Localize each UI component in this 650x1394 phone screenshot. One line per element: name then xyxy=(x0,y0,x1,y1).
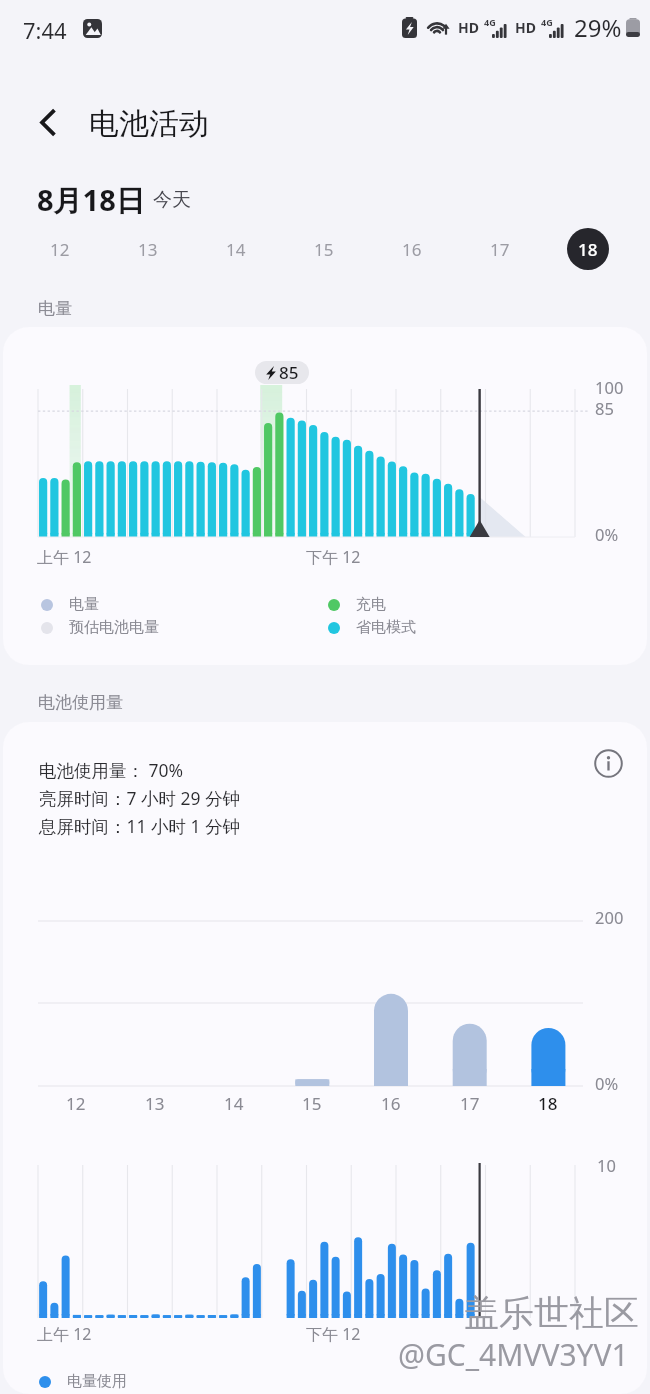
staticText: 16 xyxy=(402,238,422,261)
button[interactable]: 电池使用量： 70% xyxy=(3,722,647,1394)
staticText: 17 xyxy=(490,238,510,261)
staticText: 15 xyxy=(314,238,334,261)
staticText: 亮屏时间：7 小时 29 分钟 xyxy=(39,786,241,810)
staticText: 盖乐世社区 xyxy=(464,1291,639,1335)
staticText: 电池使用量 xyxy=(38,692,123,713)
staticText: 14 xyxy=(224,1092,244,1115)
staticText: 电池使用量： 70% xyxy=(39,758,184,782)
staticText: 电量 xyxy=(69,595,99,614)
button[interactable]: 16 xyxy=(391,228,433,270)
staticText: 29% xyxy=(574,11,622,43)
staticText: 13 xyxy=(145,1092,165,1115)
staticText: 省电模式 xyxy=(356,618,416,637)
staticText: 100 xyxy=(595,376,624,398)
staticText: 18 xyxy=(538,1092,558,1115)
button[interactable]: 返回 xyxy=(23,97,73,147)
staticText: 今天 xyxy=(153,188,191,212)
button[interactable]: 17 xyxy=(479,228,521,270)
staticText: 13 xyxy=(138,238,158,261)
staticText: 上午 12 xyxy=(37,1323,92,1345)
staticText: 4G xyxy=(541,16,553,28)
staticText: 18 xyxy=(578,238,598,261)
staticText: HD xyxy=(458,18,479,37)
button[interactable]: 信息 xyxy=(585,740,631,786)
staticText: 15 xyxy=(302,1092,322,1115)
button[interactable]: 100 xyxy=(3,327,647,665)
button[interactable]: 14 xyxy=(215,228,257,270)
button[interactable]: 18 xyxy=(567,228,609,270)
staticText: 16 xyxy=(381,1092,401,1115)
button[interactable]: 13 xyxy=(127,228,169,270)
staticText: 10 xyxy=(597,1154,616,1176)
staticText: 85 xyxy=(595,397,614,419)
button[interactable]: 15 xyxy=(303,228,345,270)
staticText: 4G xyxy=(484,16,496,28)
staticText: 下午 12 xyxy=(306,1323,361,1345)
staticText: 上午 12 xyxy=(37,546,92,568)
staticText: 预估电池电量 xyxy=(69,618,159,637)
staticText: 0% xyxy=(595,1072,619,1094)
staticText: 17 xyxy=(460,1092,480,1115)
staticText: 7:44 xyxy=(23,15,67,45)
button[interactable]: 12 xyxy=(39,228,81,270)
staticText: 8月18日 xyxy=(37,180,145,220)
staticText: 0% xyxy=(595,523,619,545)
staticText: @GC_4MVV3YV1 xyxy=(398,1334,629,1375)
staticText: 14 xyxy=(226,238,246,261)
staticText: 充电 xyxy=(356,595,386,614)
staticText: 下午 12 xyxy=(306,546,361,568)
staticText: 12 xyxy=(66,1092,86,1115)
staticText: 息屏时间：11 小时 1 分钟 xyxy=(39,814,241,838)
staticText: 12 xyxy=(50,238,70,261)
staticText: 电池活动 xyxy=(89,105,209,143)
staticText: HD xyxy=(515,18,536,37)
staticText: 85 xyxy=(279,361,299,384)
staticText: 电量 xyxy=(38,298,72,319)
staticText: 电量使用 xyxy=(67,1372,127,1391)
staticText: 200 xyxy=(595,906,624,928)
